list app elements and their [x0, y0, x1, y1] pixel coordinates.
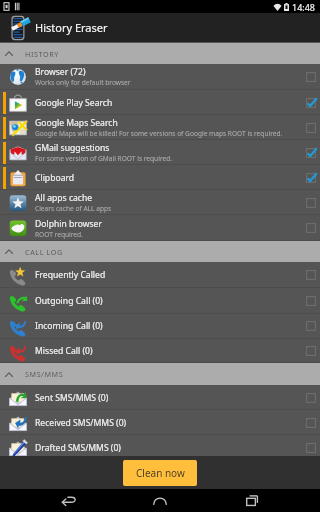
staticText: ROOT required.	[35, 230, 83, 239]
button[interactable]: Home	[136, 489, 184, 512]
button[interactable]: HISTORY	[0, 43, 320, 64]
staticText: Outgoing Call (0)	[35, 295, 103, 307]
button[interactable]: Google Maps Search	[0, 115, 320, 140]
button[interactable]: Recent apps	[228, 489, 276, 512]
staticText: Clears cache of ALL apps	[35, 204, 112, 213]
button[interactable]: Incoming Call (0)	[0, 313, 320, 339]
staticText: GMail suggestions	[35, 142, 110, 154]
staticText: All apps cache	[35, 192, 93, 204]
staticText: Google Play Search	[35, 97, 113, 109]
button[interactable]: Clipboard	[0, 165, 320, 190]
button[interactable]: Clean now	[123, 460, 197, 486]
staticText: For some version of GMail ROOT is requir…	[35, 154, 173, 163]
staticText: CALL LOG	[25, 247, 63, 257]
button[interactable]: Received SMS/MMS (0)	[0, 410, 320, 435]
button[interactable]: Sent SMS/MMS (0)	[0, 386, 320, 410]
staticText: HISTORY	[25, 49, 59, 59]
staticText: Incoming Call (0)	[35, 320, 103, 332]
staticText: Google Maps will be killed! For some ver…	[35, 129, 283, 138]
staticText: Google Maps Search	[35, 117, 118, 129]
staticText: Browser (72)	[35, 66, 86, 78]
button[interactable]: Back	[44, 489, 92, 512]
button[interactable]: All apps cache	[0, 190, 320, 215]
staticText: Clean now	[136, 466, 185, 480]
button[interactable]: Missed Call (0)	[0, 339, 320, 363]
staticText: SMS/MMS	[25, 369, 64, 379]
button[interactable]: Outgoing Call (0)	[0, 288, 320, 314]
button[interactable]: GMail suggestions	[0, 140, 320, 165]
staticText: Works only for default browser	[35, 78, 131, 87]
staticText: Clipboard	[35, 172, 75, 184]
button[interactable]: Browser (72)	[0, 63, 320, 90]
staticText: Missed Call (0)	[35, 345, 93, 357]
button[interactable]: History Eraser	[0, 13, 320, 42]
button[interactable]: Dolphin browser	[0, 215, 320, 241]
button[interactable]: Google Play Search	[0, 90, 320, 115]
staticText: Frequently Called	[35, 269, 106, 281]
staticText: Sent SMS/MMS (0)	[35, 392, 109, 404]
staticText: History Eraser	[35, 20, 108, 35]
staticText: Received SMS/MMS (0)	[35, 417, 127, 429]
button[interactable]: SMS/MMS	[0, 363, 320, 385]
button[interactable]: Drafted SMS/MMS (0)	[0, 435, 320, 460]
button[interactable]: Frequently Called	[0, 262, 320, 288]
button[interactable]: CALL LOG	[0, 241, 320, 262]
staticText: Drafted SMS/MMS (0)	[35, 442, 121, 454]
staticText: 14:48	[292, 1, 316, 13]
staticText: Dolphin browser	[35, 218, 103, 230]
